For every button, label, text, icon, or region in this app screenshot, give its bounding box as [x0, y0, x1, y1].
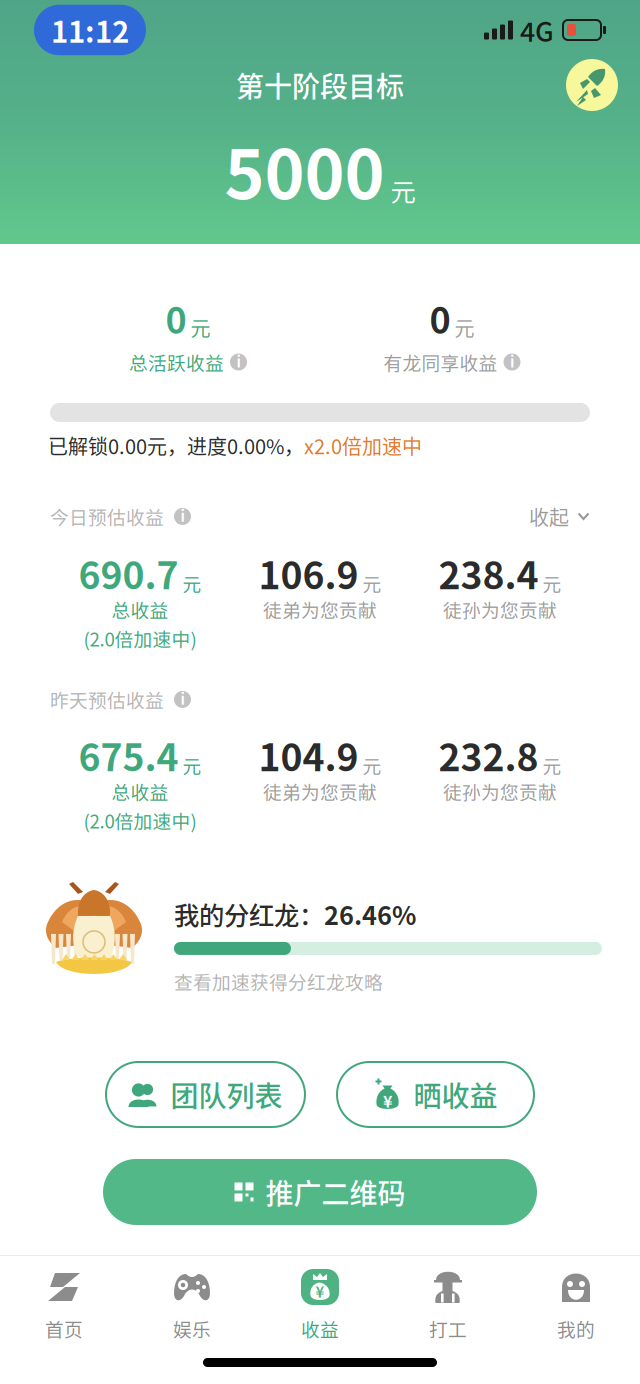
staticText: 238.4: [438, 546, 538, 600]
staticText: 690.7: [78, 546, 178, 600]
staticText: 元: [542, 570, 561, 597]
staticText: (2.0倍加速中): [83, 807, 196, 834]
staticText: 收益: [301, 1315, 339, 1342]
staticText: 第十阶段目标: [236, 65, 404, 105]
staticText: 我的分红龙：: [174, 896, 324, 932]
staticText: 有龙同享收益: [383, 348, 497, 375]
staticText: 今日预估收益: [50, 503, 164, 530]
staticText: 推广二维码: [265, 1172, 405, 1212]
button[interactable]: ¥: [256, 1268, 384, 1342]
staticText: 徒弟为您贡献: [263, 778, 377, 805]
staticText: 5000: [224, 120, 384, 218]
button[interactable]: ¥: [337, 1062, 534, 1127]
staticText: 徒弟为您贡献: [263, 596, 377, 623]
staticText: 元: [454, 313, 474, 342]
staticText: i: [180, 688, 184, 709]
button[interactable]: 首页: [0, 1268, 128, 1342]
staticText: 已解锁0.00元，进度0.00%，: [48, 431, 304, 460]
button[interactable]: 打工: [384, 1268, 512, 1342]
staticText: 总收益: [111, 778, 168, 805]
staticText: x2.0倍加速中: [304, 431, 422, 460]
staticText: 11:12: [51, 9, 129, 51]
staticText: 元: [182, 570, 201, 597]
staticText: 元: [362, 570, 381, 597]
staticText: 晒收益: [413, 1074, 497, 1115]
button[interactable]: 推广二维码: [103, 1159, 537, 1225]
staticText: 总收益: [111, 596, 168, 623]
staticText: 元: [362, 752, 381, 779]
staticText: 元: [542, 752, 561, 779]
staticText: 我的: [557, 1315, 595, 1342]
staticText: 打工: [429, 1315, 467, 1342]
staticText: 104.9: [258, 728, 358, 782]
staticText: 0: [429, 292, 450, 344]
button[interactable]: 团队列表: [106, 1062, 305, 1127]
staticText: 0: [165, 292, 186, 344]
staticText: 团队列表: [170, 1074, 282, 1115]
staticText: 106.9: [258, 546, 358, 600]
staticText: 首页: [45, 1315, 83, 1342]
staticText: 查看加速获得分红龙攻略: [174, 968, 383, 995]
button[interactable]: 娱乐: [128, 1268, 256, 1342]
staticText: 元: [182, 752, 201, 779]
staticText: ¥: [383, 1089, 392, 1112]
button[interactable]: 加速: [566, 59, 618, 111]
staticText: i: [236, 350, 240, 372]
staticText: 总活跃收益: [129, 348, 224, 375]
button[interactable]: 我的: [512, 1268, 640, 1342]
staticText: ¥: [315, 1280, 324, 1302]
staticText: i: [180, 505, 184, 526]
staticText: i: [510, 350, 514, 372]
staticText: 徒孙为您贡献: [443, 778, 557, 805]
staticText: 4G: [520, 11, 554, 49]
staticText: (2.0倍加速中): [83, 625, 196, 652]
staticText: 232.8: [438, 728, 538, 782]
staticText: 收起: [529, 502, 569, 531]
staticText: 26.46%: [324, 896, 416, 932]
staticText: 昨天预估收益: [50, 686, 164, 713]
button[interactable]: 收起: [529, 502, 590, 531]
staticText: 675.4: [78, 728, 178, 782]
staticText: 徒孙为您贡献: [443, 596, 557, 623]
staticText: 元: [190, 313, 210, 342]
staticText: 娱乐: [173, 1315, 211, 1342]
staticText: 元: [390, 172, 415, 208]
